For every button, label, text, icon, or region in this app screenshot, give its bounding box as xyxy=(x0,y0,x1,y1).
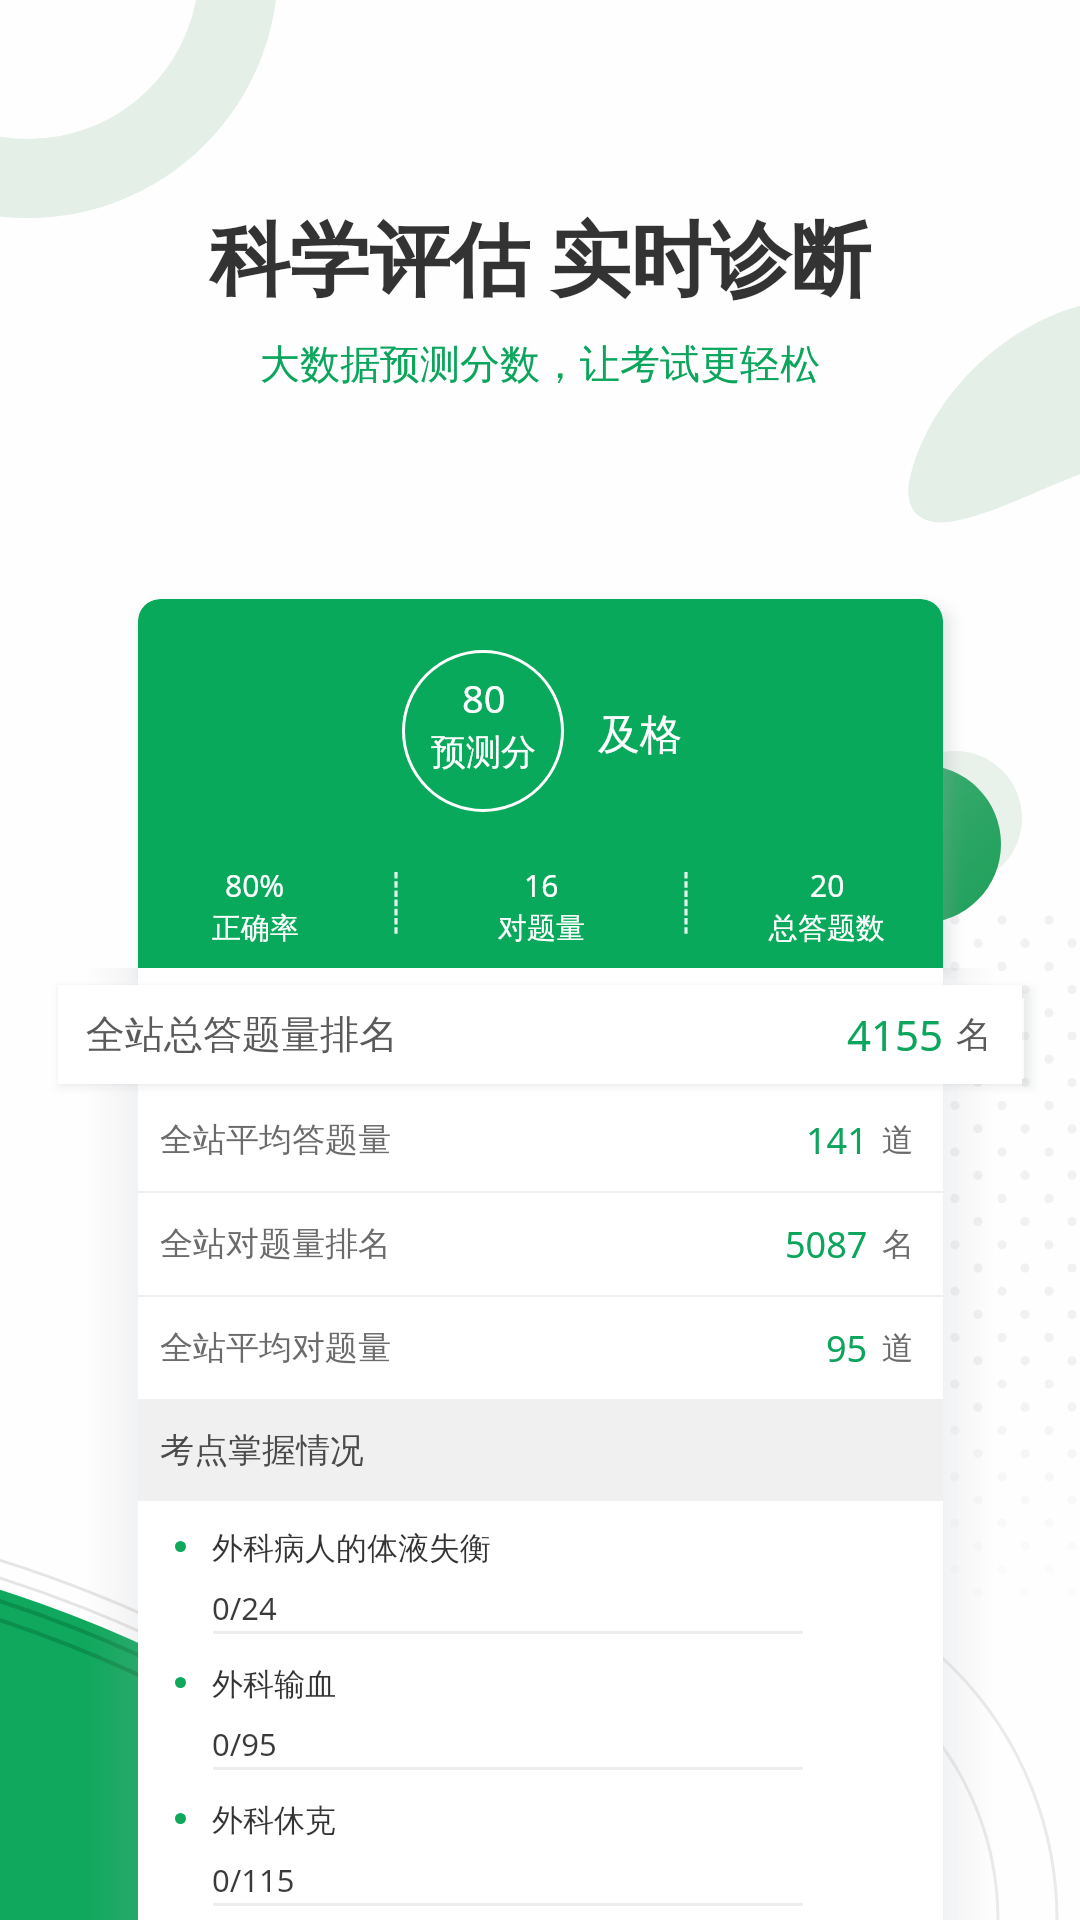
staticText: 外科输血 xyxy=(212,1665,336,1704)
staticText: 名 xyxy=(956,1012,992,1057)
staticText: 80% xyxy=(225,865,285,906)
button[interactable]: 外科休克 xyxy=(138,1773,943,1909)
button[interactable]: 外科输血 xyxy=(138,1637,943,1773)
button[interactable]: 全站总答题量排名 xyxy=(58,985,1022,1084)
staticText: 总答题数 xyxy=(769,910,885,947)
staticText: 科学评估 实时诊断 xyxy=(0,202,1080,311)
staticText: 4155 xyxy=(847,1006,944,1063)
staticText: 预测分 xyxy=(431,730,536,774)
staticText: 对题量 xyxy=(498,910,585,947)
staticText: 道 xyxy=(882,1120,914,1160)
staticText: 外科病人的体液失衡 xyxy=(212,1529,491,1568)
staticText: 考点掌握情况 xyxy=(160,1429,364,1472)
staticText: 全站平均答题量 xyxy=(160,1119,391,1161)
staticText: 80 xyxy=(462,672,506,724)
staticText: 全站总答题量排名 xyxy=(86,1010,398,1059)
staticText: 0/95 xyxy=(212,1723,277,1765)
staticText: 0/24 xyxy=(212,1587,277,1629)
button[interactable]: 全站平均对题量 xyxy=(138,1297,943,1399)
staticText: 16 xyxy=(524,865,559,906)
staticText: 名 xyxy=(882,1224,914,1264)
staticText: 0/115 xyxy=(212,1859,295,1901)
staticText: 95 xyxy=(826,1324,868,1373)
staticText: 及格 xyxy=(580,709,700,762)
staticText: 道 xyxy=(882,1328,914,1368)
staticText: 外科休克 xyxy=(212,1801,336,1840)
button[interactable]: 考点掌握情况 xyxy=(138,1399,943,1501)
staticText: 全站平均对题量 xyxy=(160,1327,391,1369)
staticText: 20 xyxy=(810,865,845,906)
staticText: 大数据预测分数，让考试更轻松 xyxy=(0,339,1080,389)
button[interactable]: 全站平均答题量 xyxy=(138,1089,943,1191)
button[interactable]: 外科病人的体液失衡 xyxy=(138,1501,943,1637)
staticText: 全站对题量排名 xyxy=(160,1223,391,1265)
staticText: 正确率 xyxy=(212,910,299,947)
button[interactable]: 80 xyxy=(138,599,943,968)
button[interactable]: 全站对题量排名 xyxy=(138,1193,943,1295)
staticText: 5087 xyxy=(785,1220,868,1269)
staticText: 141 xyxy=(806,1116,868,1165)
